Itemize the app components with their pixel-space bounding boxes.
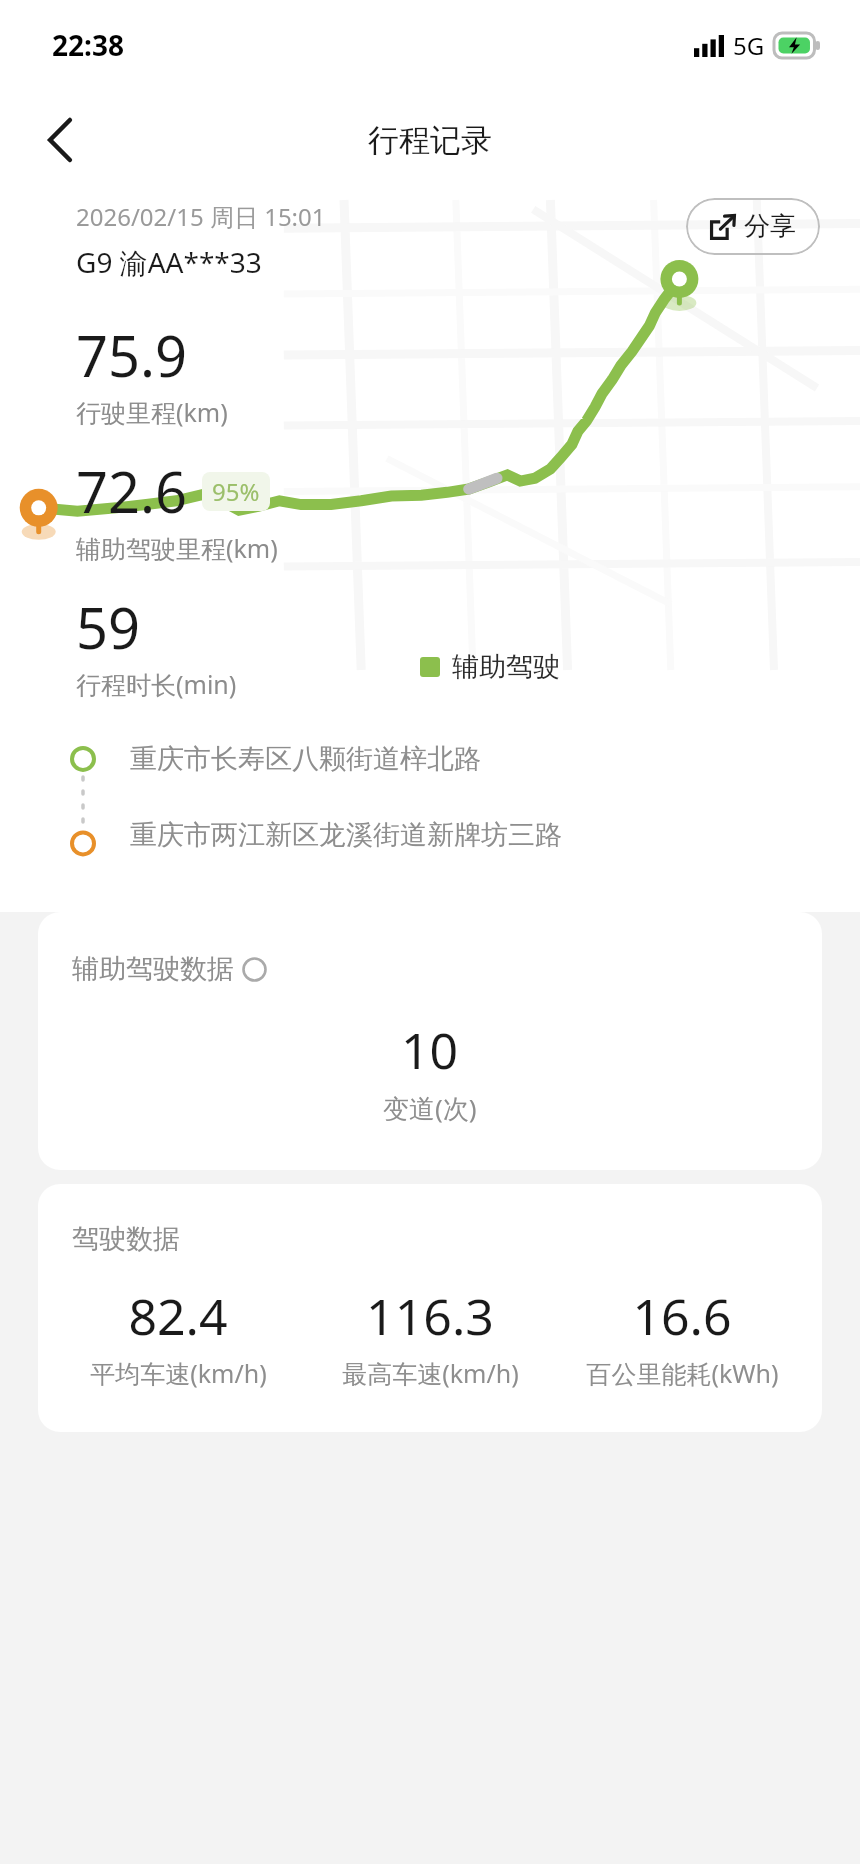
staticText: 重庆市长寿区八颗街道梓北路 (130, 742, 481, 776)
staticText: 行程时长(min) (76, 667, 237, 701)
staticText: 2026/02/15 周日 15:01 (76, 200, 326, 233)
staticText: 变道(次) (383, 1090, 477, 1126)
staticText: 百公里能耗(kWh) (586, 1356, 779, 1390)
staticText: 辅助驾驶数据 (72, 952, 234, 986)
staticText: 59 (76, 589, 141, 665)
staticText: G9 渝AA***33 (76, 243, 262, 281)
staticText: 行程记录 (368, 121, 492, 160)
staticText: 行驶里程(km) (76, 395, 228, 429)
staticText: 5G (733, 29, 765, 62)
staticText: 平均车速(km/h) (90, 1356, 267, 1390)
staticText: 22:38 (52, 26, 124, 64)
button[interactable]: 驾驶数据 (38, 1184, 822, 1432)
staticText: 辅助驾驶 (452, 650, 560, 684)
staticText: 82.4 (128, 1282, 228, 1350)
button[interactable]: 分享 (686, 198, 820, 255)
staticText: 116.3 (366, 1282, 494, 1350)
staticText: 95% (212, 475, 260, 508)
staticText: 分享 (744, 210, 796, 243)
staticText: 辅助驾驶里程(km) (76, 531, 278, 565)
button[interactable]: 辅助驾驶数据 (38, 912, 822, 1170)
staticText: 10 (401, 1016, 459, 1084)
button[interactable]: Back (28, 108, 92, 172)
staticText: 重庆市两江新区龙溪街道新牌坊三路 (130, 818, 562, 852)
staticText: 75.9 (76, 317, 188, 393)
staticText: 最高车速(km/h) (342, 1356, 519, 1390)
staticText: 16.6 (632, 1282, 732, 1350)
staticText: 驾驶数据 (72, 1222, 180, 1256)
staticText: 72.6 (76, 453, 188, 529)
